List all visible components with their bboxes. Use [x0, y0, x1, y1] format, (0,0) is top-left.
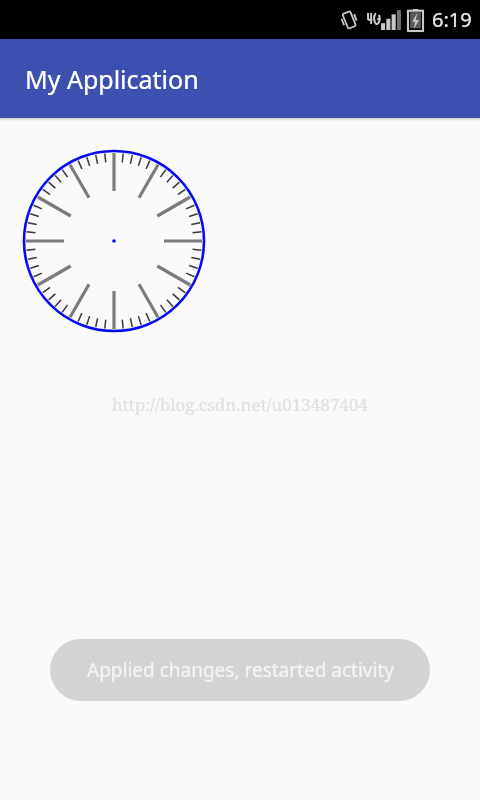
- other: Battery charging: [408, 9, 423, 31]
- button[interactable]: Applied changes, restarted activity: [50, 639, 430, 701]
- staticText: http://blog.csdn.net/u013487404: [112, 393, 368, 416]
- other: Analog clock face: [21, 148, 207, 334]
- staticText: 6:19: [432, 6, 472, 33]
- staticText: My Application: [25, 62, 199, 96]
- staticText: Applied changes, restarted activity: [87, 657, 394, 683]
- other: Vibrate mode: [340, 9, 358, 31]
